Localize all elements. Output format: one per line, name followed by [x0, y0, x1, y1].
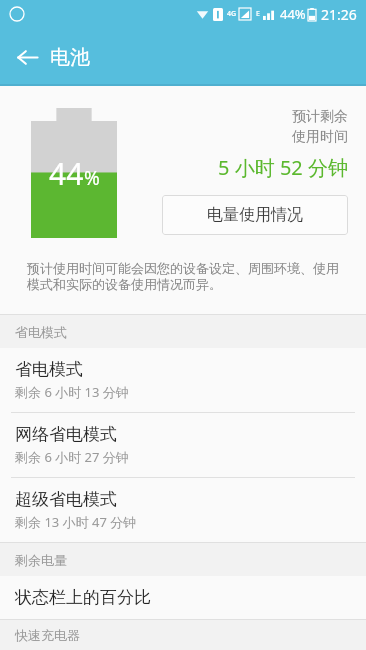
staticText: 剩余 13 小时 47 分钟	[15, 513, 137, 531]
staticText: %	[84, 165, 100, 191]
staticText: 44%	[280, 5, 306, 23]
staticText: 使用时间	[292, 128, 348, 146]
staticText: E	[256, 9, 260, 19]
staticText: 剩余电量	[15, 552, 67, 568]
staticText: 电量使用情况	[207, 205, 303, 225]
staticText: 剩余 6 小时 27 分钟	[15, 448, 129, 466]
staticText: 5 小时 52 分钟	[218, 154, 348, 181]
staticText: 4G	[227, 9, 237, 19]
staticText: 超级省电模式	[15, 489, 117, 510]
staticText: 状态栏上的百分比	[15, 587, 151, 608]
staticText: 模式和实际的设备使用情况而异。	[27, 276, 222, 292]
staticText: 快速充电器	[15, 627, 80, 643]
button[interactable]: 省电模式	[0, 348, 366, 412]
staticText: 剩余 6 小时 13 分钟	[15, 383, 129, 401]
button[interactable]: 网络省电模式	[0, 412, 366, 477]
button[interactable]: Back	[8, 38, 46, 76]
staticText: 21:26	[321, 5, 357, 24]
staticText: 省电模式	[15, 359, 83, 380]
staticText: 预计剩余	[292, 108, 348, 126]
staticText: 预计使用时间可能会因您的设备设定、周围环境、使用	[27, 260, 339, 276]
button[interactable]: 电量使用情况	[162, 195, 348, 235]
staticText: 网络省电模式	[15, 424, 117, 445]
button[interactable]: 超级省电模式	[0, 477, 366, 542]
button[interactable]: 状态栏上的百分比	[0, 576, 366, 619]
staticText: 电池	[50, 45, 90, 70]
staticText: 44	[49, 153, 84, 194]
staticText: 省电模式	[15, 324, 67, 340]
